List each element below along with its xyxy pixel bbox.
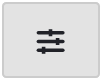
button[interactable]: Tune settings [0,0,106,80]
